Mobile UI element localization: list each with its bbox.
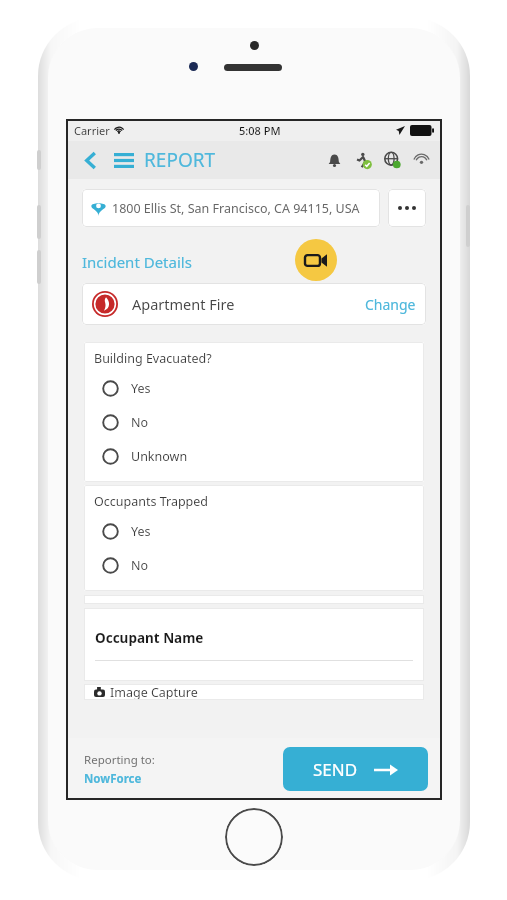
button[interactable]: More options (388, 189, 426, 227)
button[interactable]: Responder status (352, 149, 374, 171)
button[interactable]: Notifications (323, 149, 345, 171)
button[interactable]: Apartment Fire (82, 283, 426, 325)
staticText: REPORT (144, 147, 216, 173)
button[interactable]: No (94, 405, 424, 439)
staticText: No (131, 414, 149, 431)
staticText: No (131, 557, 149, 574)
button[interactable]: Broadcast (410, 149, 432, 171)
button[interactable]: Record video (295, 239, 337, 281)
button[interactable]: Unknown (94, 439, 424, 473)
staticText: Building Evacuated? (94, 350, 212, 367)
button[interactable]: Back (78, 147, 104, 173)
button[interactable]: Occupant Name (84, 608, 424, 681)
button[interactable]: Change (365, 295, 416, 314)
staticText: Incident Details (82, 252, 192, 272)
staticText: Apartment Fire (132, 294, 235, 314)
staticText: SEND (313, 758, 358, 781)
staticText: NowForce (84, 771, 142, 787)
button[interactable]: Incident Details (82, 252, 192, 272)
staticText: 5:08 PM (239, 123, 281, 138)
staticText: Reporting to: (84, 752, 155, 768)
staticText: Occupants Trapped (94, 493, 209, 510)
staticText: Image Capture (110, 684, 198, 700)
button[interactable]: Yes (94, 514, 424, 548)
button[interactable]: Network (381, 149, 403, 171)
staticText: Change (365, 295, 416, 314)
button[interactable]: Menu (110, 146, 138, 174)
staticText: Carrier (74, 123, 110, 138)
button[interactable]: Image Capture (84, 684, 424, 700)
staticText: Unknown (131, 448, 188, 465)
staticText: Yes (131, 380, 151, 397)
button[interactable]: No (94, 548, 424, 582)
button[interactable]: Yes (94, 371, 424, 405)
staticText: Yes (131, 523, 151, 540)
button[interactable]: SEND (283, 747, 428, 791)
staticText: 1800 Ellis St, San Francisco, CA 94115, … (112, 200, 360, 217)
button[interactable]: 1800 Ellis St, San Francisco, CA 94115, … (82, 189, 380, 227)
staticText: Occupant Name (95, 629, 204, 647)
